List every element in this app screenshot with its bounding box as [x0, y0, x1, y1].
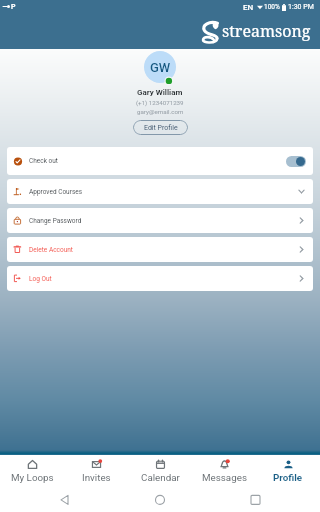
staticText: GW [150, 60, 171, 75]
staticText: P [11, 3, 16, 11]
staticText: Profile [273, 472, 303, 483]
staticText: gary@email.com [137, 108, 184, 115]
button[interactable]: Approved Courses [7, 179, 313, 204]
button[interactable]: Profile [256, 455, 320, 490]
button[interactable]: Check out toggle [286, 156, 306, 167]
staticText: Calendar [141, 472, 180, 483]
staticText: (+1) 1234071239 [136, 99, 184, 106]
staticText: Delete Account [29, 246, 73, 254]
button[interactable]: My Loops [0, 455, 64, 490]
staticText: Gary William [137, 88, 183, 97]
staticText: Approved Courses [29, 188, 83, 196]
staticText: Edit Profile [144, 124, 178, 132]
staticText: Change Password [29, 217, 82, 225]
staticText: My Loops [11, 472, 54, 483]
staticText: streamsong [222, 20, 311, 42]
staticText: 1:30 PM [288, 3, 314, 11]
button[interactable]: Change Password [7, 208, 313, 233]
button[interactable]: Invites [64, 455, 128, 490]
staticText: EN [243, 3, 254, 12]
button[interactable]: Log Out [7, 266, 313, 291]
staticText: Messages [202, 472, 247, 483]
staticText: Log Out [29, 275, 52, 283]
button[interactable]: Calendar [128, 455, 192, 490]
button[interactable]: Edit Profile [133, 120, 188, 135]
staticText: Invites [82, 472, 111, 483]
staticText: 100% [264, 3, 280, 11]
button[interactable]: Messages [192, 455, 256, 490]
staticText: Check out [29, 157, 58, 165]
button[interactable]: Check out [7, 147, 313, 175]
button[interactable]: Delete Account [7, 237, 313, 262]
